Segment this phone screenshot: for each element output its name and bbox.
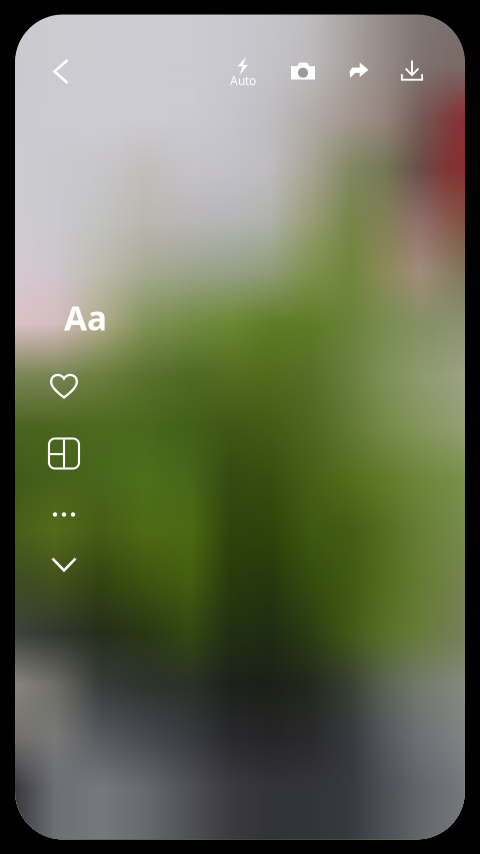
staticText: Aa xyxy=(64,295,107,340)
button[interactable]: More xyxy=(42,494,86,534)
button[interactable]: Layout xyxy=(42,433,86,473)
button[interactable]: Aa xyxy=(64,297,108,337)
button[interactable]: Back xyxy=(39,49,83,93)
button[interactable]: Share xyxy=(336,48,380,92)
button[interactable]: Collapse xyxy=(42,544,86,584)
button[interactable]: Save xyxy=(390,48,434,92)
button[interactable]: Camera xyxy=(281,48,325,92)
button[interactable]: Flash Auto xyxy=(221,49,265,93)
button[interactable]: Like xyxy=(42,365,86,405)
staticText: Auto xyxy=(230,72,256,88)
